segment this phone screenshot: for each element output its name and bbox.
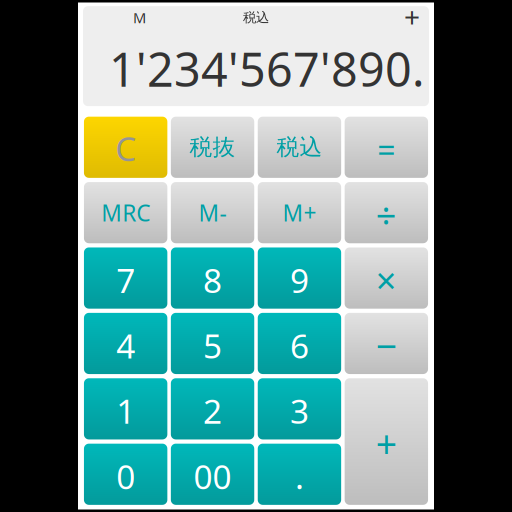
button[interactable]: Add (395, 4, 429, 30)
button[interactable]: + (345, 378, 428, 505)
staticText: 2 (203, 389, 222, 433)
button[interactable]: 7 (84, 247, 167, 309)
button[interactable]: 2 (171, 378, 254, 439)
button[interactable]: 税抜 (171, 117, 254, 178)
staticText: 1'234'567'890. (109, 38, 425, 100)
staticText: C (115, 126, 136, 170)
staticText: 6 (290, 323, 309, 368)
staticText: × (376, 256, 397, 304)
button[interactable]: × (345, 247, 428, 309)
button[interactable]: . (258, 444, 341, 505)
staticText: 1 (116, 389, 135, 433)
button[interactable]: 6 (258, 313, 341, 374)
button[interactable]: 00 (171, 444, 254, 505)
staticText: 0 (116, 454, 135, 498)
staticText: 税抜 (190, 133, 236, 161)
button[interactable]: M- (171, 182, 254, 243)
staticText: M (133, 8, 146, 27)
staticText: 税込 (243, 9, 269, 26)
staticText: + (376, 419, 397, 468)
staticText: 00 (194, 454, 232, 498)
button[interactable]: 5 (171, 313, 254, 374)
staticText: . (295, 454, 304, 498)
staticText: 税込 (276, 133, 322, 161)
staticText: 5 (203, 323, 222, 368)
staticText: M+ (282, 198, 316, 228)
button[interactable]: 3 (258, 378, 341, 439)
button[interactable]: 0 (84, 444, 167, 505)
staticText: 3 (290, 389, 309, 433)
staticText: ÷ (376, 191, 397, 238)
button[interactable]: − (345, 313, 428, 374)
staticText: MRC (101, 198, 150, 228)
button[interactable]: 1 (84, 378, 167, 439)
staticText: 7 (116, 258, 135, 302)
button[interactable]: 8 (171, 247, 254, 309)
button[interactable]: 税込 (258, 117, 341, 178)
button[interactable]: ÷ (345, 182, 428, 243)
button[interactable]: = (345, 117, 428, 178)
button[interactable]: 4 (84, 313, 167, 374)
staticText: 9 (290, 258, 309, 302)
button[interactable]: M+ (258, 182, 341, 243)
staticText: + (404, 0, 420, 35)
staticText: = (377, 128, 395, 170)
staticText: 8 (203, 258, 222, 302)
staticText: 4 (116, 323, 135, 368)
button[interactable]: MRC (84, 182, 167, 243)
button[interactable]: C (84, 117, 167, 178)
staticText: M- (199, 198, 227, 228)
staticText: − (376, 321, 397, 370)
button[interactable]: 9 (258, 247, 341, 309)
